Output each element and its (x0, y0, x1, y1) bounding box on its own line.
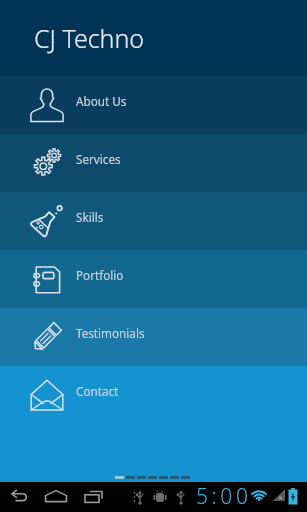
staticText: About Us (76, 93, 127, 109)
staticText: Contact (76, 383, 119, 399)
button[interactable]: Back (2, 482, 40, 512)
staticText: Portfolio (76, 267, 124, 283)
button[interactable]: Services (0, 134, 307, 192)
button[interactable]: Portfolio (0, 250, 307, 308)
staticText: Services (76, 151, 121, 167)
staticText: Testimonials (76, 325, 145, 341)
staticText: Skills (76, 209, 104, 225)
staticText: 5:00 (196, 482, 252, 511)
button[interactable]: Contact (0, 366, 307, 424)
staticText: CJ Techno (34, 21, 145, 55)
button[interactable]: About Us (0, 76, 307, 134)
button[interactable]: Home (40, 482, 78, 512)
button[interactable]: Recent apps (78, 482, 116, 512)
button[interactable]: Testimonials (0, 308, 307, 366)
button[interactable]: Skills (0, 192, 307, 250)
